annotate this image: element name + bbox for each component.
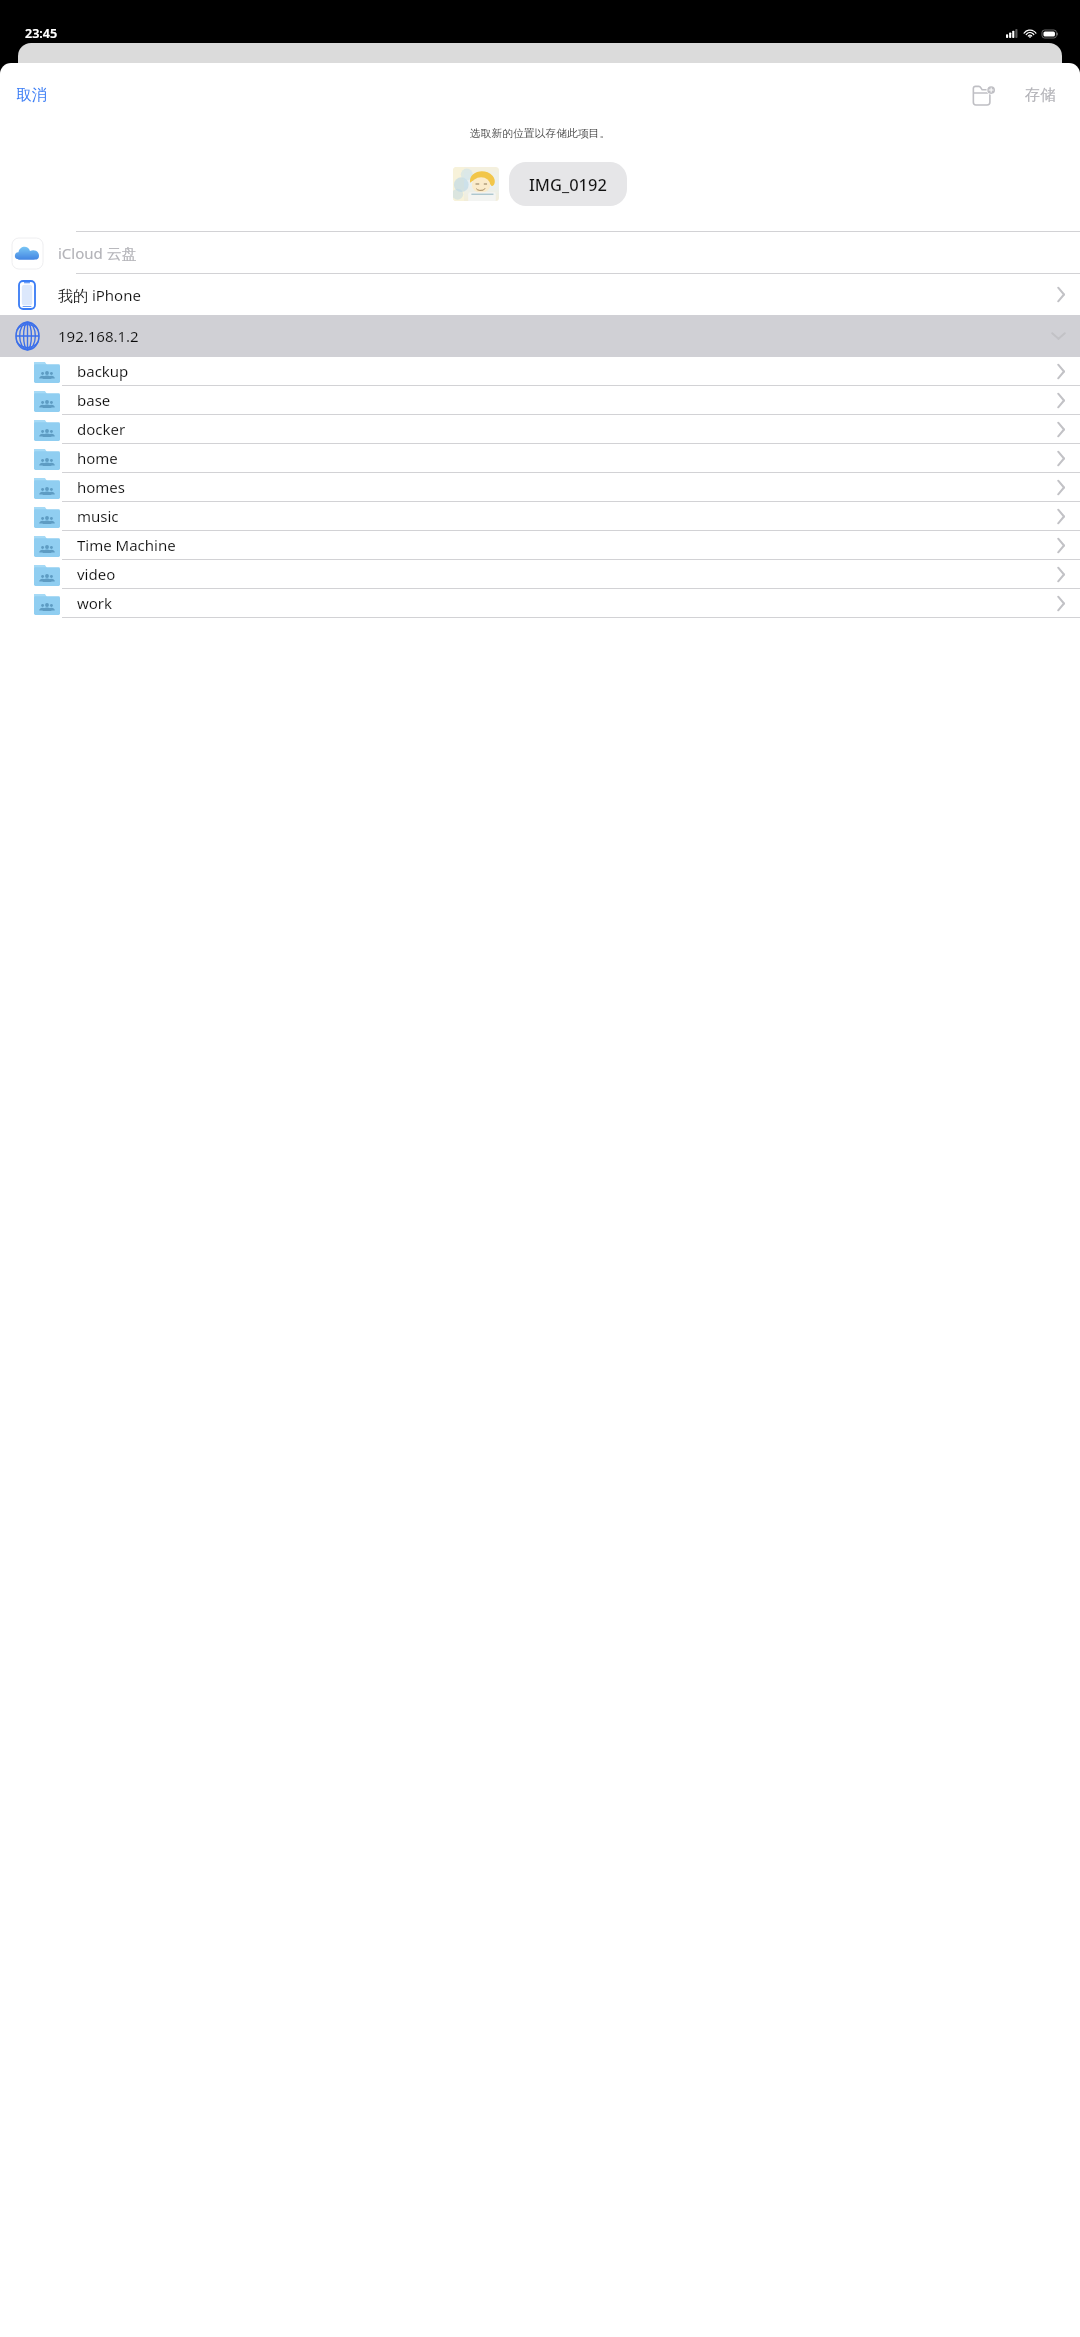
button[interactable]: 取消 (0, 75, 63, 115)
staticText: video (77, 564, 116, 584)
button[interactable]: 我的 iPhone (0, 274, 1080, 315)
button[interactable]: iCloud 云盘 (0, 232, 1080, 273)
staticText: 192.168.1.2 (58, 326, 139, 346)
staticText: music (77, 506, 119, 526)
button[interactable]: Time Machine (0, 531, 1080, 559)
button[interactable]: home (0, 444, 1080, 472)
other: Collapse (1051, 331, 1066, 341)
staticText: Time Machine (77, 535, 176, 555)
staticText: 存储 (1025, 85, 1056, 105)
staticText: docker (77, 419, 126, 439)
button[interactable]: homes (0, 473, 1080, 501)
button[interactable]: New Folder (963, 78, 1005, 113)
staticText: base (77, 390, 111, 410)
staticText: backup (77, 361, 129, 381)
button[interactable]: base (0, 386, 1080, 414)
staticText: home (77, 448, 118, 468)
staticText: 我的 iPhone (58, 285, 141, 305)
button[interactable]: 192.168.1.2 (0, 315, 1080, 357)
staticText: 取消 (16, 85, 47, 105)
button[interactable]: work (0, 589, 1080, 617)
button[interactable]: 存储 (1015, 75, 1066, 115)
staticText: 23:45 (25, 25, 58, 42)
staticText: 选取新的位置以存储此项目。 (0, 127, 1080, 141)
button[interactable]: video (0, 560, 1080, 588)
button[interactable]: docker (0, 415, 1080, 443)
staticText: iCloud 云盘 (58, 243, 137, 263)
button[interactable]: music (0, 502, 1080, 530)
staticText: work (77, 593, 113, 613)
button[interactable]: backup (0, 357, 1080, 385)
button[interactable]: IMG_0192 (509, 162, 627, 206)
staticText: homes (77, 477, 126, 497)
staticText: IMG_0192 (529, 173, 607, 195)
